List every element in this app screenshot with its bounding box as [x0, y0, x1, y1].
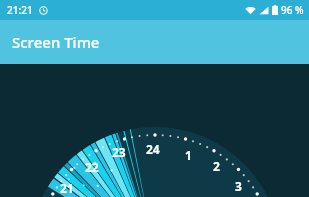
staticText: 2: [213, 158, 220, 174]
staticText: 21:21: [7, 3, 33, 17]
staticText: 22: [85, 159, 99, 175]
staticText: 96 %: [281, 3, 304, 17]
button[interactable]: Screen time radial chart: [0, 64, 309, 197]
staticText: 3: [235, 178, 242, 194]
staticText: Screen Time: [12, 32, 100, 52]
button[interactable]: Screen Time: [0, 20, 309, 64]
staticText: 24: [146, 141, 160, 157]
staticText: 23: [112, 144, 126, 160]
staticText: 1: [185, 147, 192, 163]
staticText: 21: [60, 180, 74, 196]
